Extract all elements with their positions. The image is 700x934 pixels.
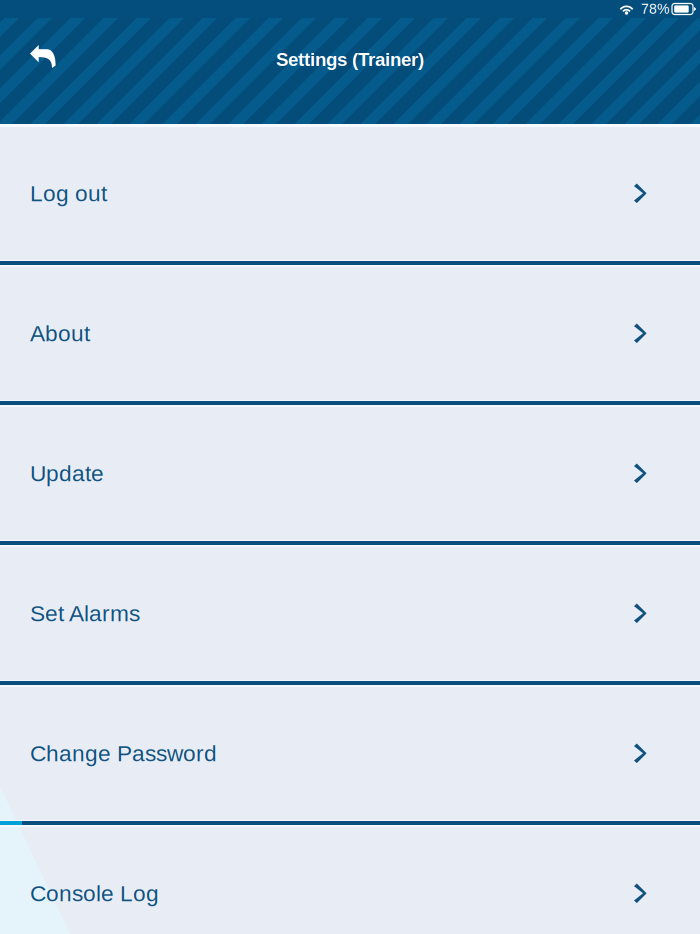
staticText: Update — [30, 461, 104, 486]
button[interactable]: Change Password — [0, 687, 700, 820]
staticText: 78% — [641, 1, 669, 17]
staticText: Change Password — [30, 741, 217, 766]
button[interactable]: Set Alarms — [0, 547, 700, 680]
button[interactable]: Console Log — [0, 827, 700, 934]
button[interactable]: Back — [0, 18, 74, 84]
staticText: Settings (Trainer) — [276, 49, 424, 70]
button[interactable]: Update — [0, 407, 700, 540]
staticText: Log out — [30, 181, 107, 206]
staticText: About — [30, 321, 90, 346]
staticText: Console Log — [30, 881, 159, 906]
button[interactable]: Log out — [0, 127, 700, 260]
button[interactable]: About — [0, 267, 700, 400]
staticText: Set Alarms — [30, 601, 140, 626]
